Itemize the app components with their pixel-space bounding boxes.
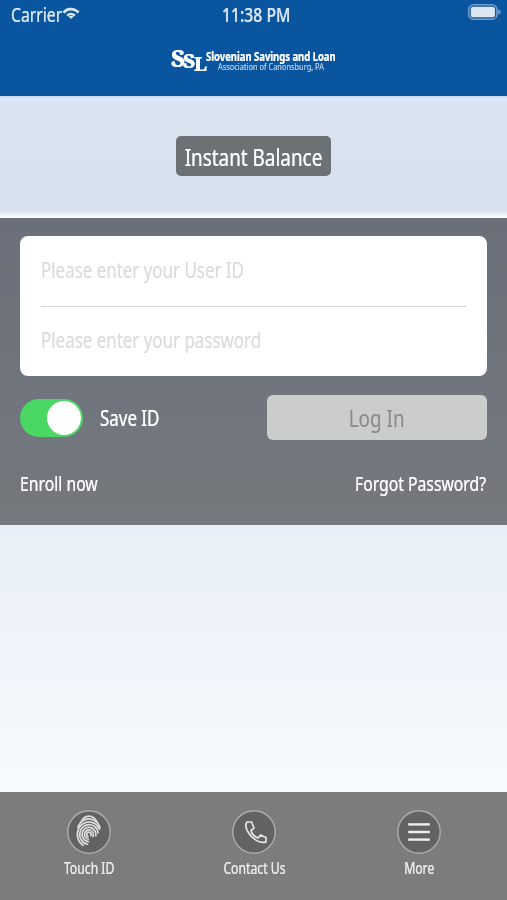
staticText: Instant Balance bbox=[185, 140, 322, 173]
staticText: Association of Canonsburg, PA bbox=[218, 60, 324, 73]
button[interactable]: Enroll now bbox=[20, 470, 119, 497]
button[interactable]: Please enter your password bbox=[20, 307, 487, 376]
button[interactable]: Log In bbox=[267, 395, 487, 440]
staticText: S bbox=[183, 47, 196, 74]
staticText: Enroll now bbox=[20, 470, 98, 497]
staticText: Forgot Password? bbox=[355, 470, 486, 497]
staticText: Slovenian Savings and Loan bbox=[206, 47, 336, 65]
button[interactable]: Instant Balance bbox=[176, 136, 331, 176]
staticText: 11:38 PM bbox=[222, 1, 290, 28]
staticText: Log In bbox=[349, 401, 405, 434]
button[interactable]: Forgot Password? bbox=[355, 470, 507, 497]
button[interactable]: More bbox=[369, 810, 469, 878]
staticText: S bbox=[171, 42, 185, 73]
staticText: Carrier bbox=[11, 1, 63, 28]
button[interactable]: Contact Us bbox=[204, 810, 304, 878]
staticText: Touch ID bbox=[64, 857, 115, 878]
staticText: More bbox=[404, 857, 435, 878]
staticText: L bbox=[194, 51, 207, 77]
button[interactable]: Please enter your User ID bbox=[20, 236, 487, 306]
button[interactable]: Save ID bbox=[20, 399, 176, 437]
staticText: Please enter your password bbox=[41, 325, 261, 354]
staticText: Save ID bbox=[100, 403, 160, 432]
staticText: Contact Us bbox=[223, 857, 286, 878]
button[interactable]: Touch ID bbox=[39, 810, 139, 878]
staticText: Please enter your User ID bbox=[41, 255, 244, 284]
